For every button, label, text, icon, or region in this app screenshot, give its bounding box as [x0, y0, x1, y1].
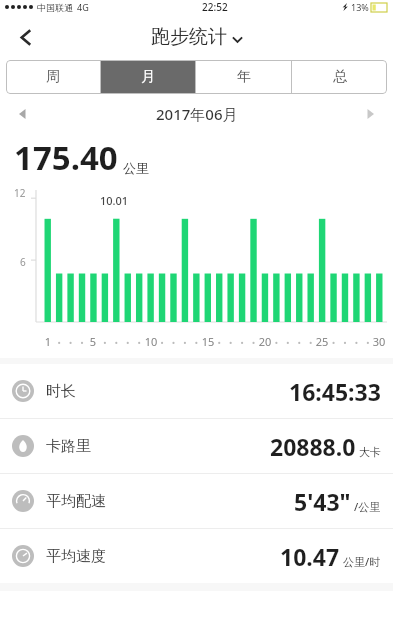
button[interactable]: Next month	[353, 97, 387, 131]
button[interactable]: 周	[6, 60, 100, 94]
button[interactable]: 跑步统计	[151, 25, 243, 49]
staticText: 公里/时	[343, 554, 381, 569]
staticText: 5'43"	[294, 486, 351, 517]
staticText: 12	[14, 186, 26, 200]
staticText: 16:45:33	[289, 376, 381, 407]
staticText: 平均速度	[46, 547, 106, 566]
staticText: 年	[237, 68, 251, 86]
button[interactable]: 卡路里	[0, 419, 393, 473]
staticText: 25	[314, 334, 330, 349]
staticText: 卡路里	[46, 437, 91, 456]
staticText: 30	[371, 334, 387, 349]
staticText: 公里	[123, 160, 149, 176]
staticText: 时长	[46, 382, 76, 401]
staticText: 中国联通	[37, 2, 73, 13]
staticText: 4G	[77, 1, 89, 13]
button[interactable]: 平均配速	[0, 474, 393, 528]
staticText: 20	[257, 334, 273, 349]
button[interactable]: Back	[6, 17, 46, 57]
staticText: 6	[20, 255, 26, 269]
staticText: 22:52	[202, 0, 228, 14]
staticText: 大卡	[359, 445, 381, 459]
staticText: 跑步统计	[151, 25, 227, 49]
staticText: 月	[141, 68, 155, 86]
staticText: 平均配速	[46, 492, 106, 511]
staticText: 10.01	[100, 193, 129, 208]
staticText: 175.40	[14, 135, 118, 180]
staticText: 总	[333, 68, 347, 86]
staticText: 20888.0	[270, 431, 356, 462]
button[interactable]: 月	[101, 60, 195, 94]
button[interactable]: 时长	[0, 364, 393, 418]
staticText: 周	[46, 68, 60, 86]
button[interactable]: 年	[196, 60, 291, 94]
button[interactable]: Previous month	[6, 97, 40, 131]
button[interactable]: 总	[292, 60, 387, 94]
button[interactable]: 平均速度	[0, 529, 393, 583]
staticText: 10.47	[280, 541, 340, 572]
staticText: 13%	[351, 1, 369, 13]
staticText: 1	[40, 334, 56, 349]
staticText: /公里	[354, 499, 381, 514]
staticText: 2017年06月	[156, 104, 238, 124]
staticText: 15	[200, 334, 216, 349]
staticText: 10	[143, 334, 159, 349]
staticText: 5	[85, 334, 101, 349]
